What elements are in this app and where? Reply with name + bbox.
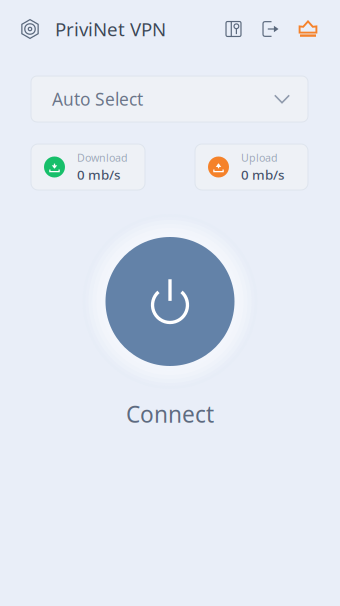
staticText: 0 mb/s: [77, 166, 120, 183]
staticText: 0 mb/s: [241, 166, 284, 183]
button[interactable]: Connect: [82, 214, 257, 389]
staticText: Upload: [241, 151, 278, 165]
staticText: Auto Select: [52, 87, 143, 110]
staticText: PriviNet VPN: [55, 17, 166, 41]
button[interactable]: Go premium: [297, 12, 319, 46]
staticText: Connect: [126, 399, 214, 429]
button[interactable]: Auto Select: [31, 76, 308, 122]
button[interactable]: Sign out: [260, 12, 281, 46]
button[interactable]: PriviNet VPN settings: [20, 9, 166, 49]
button[interactable]: Server locations: [223, 12, 244, 46]
staticText: Download: [77, 151, 128, 165]
